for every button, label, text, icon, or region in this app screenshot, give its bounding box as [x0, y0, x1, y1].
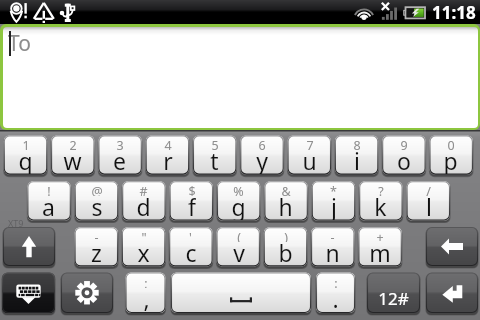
- staticText: -: [330, 229, 335, 242]
- staticText: ": [141, 229, 147, 242]
- staticText: .: [332, 283, 339, 314]
- staticText: f: [188, 191, 196, 220]
- staticText: s: [91, 191, 103, 220]
- staticText: @: [91, 183, 103, 196]
- button[interactable]: h: [264, 181, 307, 220]
- staticText: *: [330, 183, 337, 196]
- staticText: q: [18, 145, 33, 174]
- staticText: ): [284, 229, 288, 242]
- staticText: ,: [143, 283, 150, 314]
- button[interactable]: q: [4, 135, 47, 174]
- staticText: r: [163, 145, 173, 174]
- staticText: j: [331, 191, 337, 220]
- button[interactable]: k: [359, 181, 402, 220]
- staticText: +: [376, 229, 384, 242]
- staticText: c: [185, 237, 197, 266]
- staticText: !: [47, 183, 51, 196]
- button[interactable]: y: [240, 135, 283, 174]
- button[interactable]: ,: [126, 273, 166, 314]
- staticText: a: [42, 191, 55, 220]
- button[interactable]: f: [170, 181, 213, 220]
- button[interactable]: u: [288, 135, 331, 174]
- staticText: -: [94, 229, 99, 242]
- button[interactable]: Hide keyboard: [2, 273, 55, 314]
- button[interactable]: .: [316, 273, 355, 314]
- staticText: 2: [69, 137, 77, 150]
- staticText: m: [369, 237, 391, 266]
- button[interactable]: Enter: [426, 273, 478, 314]
- button[interactable]: l: [407, 181, 450, 220]
- staticText: t: [210, 145, 219, 174]
- staticText: 3: [116, 137, 124, 150]
- staticText: 12#: [378, 287, 409, 310]
- staticText: o: [397, 145, 411, 174]
- staticText: d: [136, 191, 151, 220]
- staticText: To: [8, 29, 31, 58]
- staticText: l: [426, 191, 432, 220]
- button[interactable]: e: [98, 135, 141, 174]
- staticText: (: [237, 229, 241, 242]
- staticText: /: [426, 183, 431, 196]
- button[interactable]: Backspace: [426, 227, 478, 266]
- staticText: e: [113, 145, 126, 174]
- staticText: ': [189, 229, 192, 242]
- button[interactable]: Keyboard settings: [61, 273, 113, 314]
- button[interactable]: Space: [171, 273, 311, 314]
- button[interactable]: x: [122, 227, 165, 266]
- button[interactable]: c: [169, 227, 212, 266]
- staticText: 7: [306, 137, 314, 150]
- button[interactable]: p: [429, 135, 472, 174]
- staticText: k: [374, 191, 387, 220]
- staticText: b: [278, 237, 293, 266]
- staticText: ;: [144, 275, 148, 288]
- button[interactable]: d: [122, 181, 165, 220]
- staticText: w: [63, 145, 82, 174]
- staticText: u: [302, 145, 317, 174]
- staticText: y: [256, 145, 268, 174]
- button[interactable]: s: [75, 181, 118, 220]
- staticText: #: [139, 183, 148, 196]
- button[interactable]: a: [27, 181, 70, 220]
- staticText: h: [278, 191, 293, 220]
- button[interactable]: i: [335, 135, 378, 174]
- staticText: 11:18: [432, 1, 476, 24]
- staticText: 8: [353, 137, 361, 150]
- staticText: 1: [22, 137, 30, 150]
- staticText: ?: [378, 183, 384, 196]
- staticText: i: [354, 145, 360, 174]
- staticText: XT9: [8, 217, 24, 229]
- button[interactable]: 12#: [367, 273, 420, 314]
- staticText: n: [325, 237, 340, 266]
- staticText: p: [443, 145, 458, 174]
- button[interactable]: v: [217, 227, 260, 266]
- staticText: $: [188, 183, 196, 196]
- button[interactable]: To: [0, 24, 480, 130]
- button[interactable]: o: [382, 135, 425, 174]
- staticText: g: [231, 191, 246, 220]
- staticText: :: [334, 275, 338, 288]
- staticText: 6: [258, 137, 266, 150]
- staticText: 0: [447, 137, 455, 150]
- staticText: &: [281, 183, 291, 196]
- button[interactable]: n: [311, 227, 354, 266]
- button[interactable]: j: [312, 181, 355, 220]
- button[interactable]: m: [358, 227, 401, 266]
- button[interactable]: z: [75, 227, 118, 266]
- button[interactable]: g: [217, 181, 260, 220]
- button[interactable]: Shift: [3, 227, 55, 266]
- staticText: v: [233, 237, 245, 266]
- staticText: 5: [211, 137, 219, 150]
- button[interactable]: w: [51, 135, 94, 174]
- button[interactable]: b: [264, 227, 307, 266]
- staticText: %: [233, 183, 244, 196]
- staticText: 4: [164, 137, 172, 150]
- staticText: z: [91, 237, 102, 266]
- button[interactable]: t: [193, 135, 236, 174]
- staticText: 9: [400, 137, 408, 150]
- staticText: x: [137, 237, 150, 266]
- button[interactable]: r: [146, 135, 189, 174]
